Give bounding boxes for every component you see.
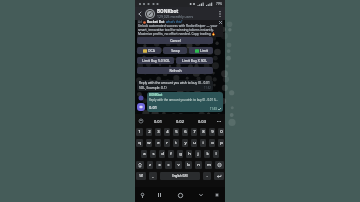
staticText: Limit Buy X SOL — [182, 58, 207, 63]
staticText: 4 — [166, 129, 169, 135]
staticText: BONKbot — [149, 93, 163, 97]
button[interactable]: q — [136, 139, 143, 147]
button[interactable]: m — [205, 161, 212, 169]
button[interactable]: 5 — [173, 128, 179, 136]
staticText: Swap — [171, 48, 180, 53]
staticText: v — [177, 162, 180, 168]
button[interactable]: i — [200, 139, 206, 147]
button[interactable]: w — [146, 139, 152, 147]
button[interactable]: k — [204, 150, 210, 158]
button[interactable]: Cancel — [137, 37, 213, 44]
button[interactable]: z — [147, 161, 153, 169]
staticText: n — [197, 162, 200, 168]
staticText: o — [211, 140, 214, 146]
button[interactable]: Voice input — [138, 118, 144, 124]
button[interactable]: More suggestions — [216, 118, 222, 124]
button[interactable]: Enter — [214, 172, 224, 180]
button[interactable]: . — [203, 172, 211, 180]
staticText: a — [143, 151, 146, 157]
staticText: English (UK) — [172, 174, 188, 178]
staticText: 1 — [138, 129, 141, 135]
button[interactable]: 8 — [200, 128, 206, 136]
button[interactable]: Shift — [136, 161, 144, 169]
staticText: BONKbot — [157, 8, 179, 14]
button[interactable]: o — [209, 139, 215, 147]
button[interactable]: h — [186, 150, 192, 158]
button[interactable]: English (UK) — [160, 172, 200, 180]
staticText: w — [147, 140, 151, 146]
staticText: 0.02 — [176, 119, 184, 124]
staticText: Reply with the amount you wish to buy (0… — [139, 81, 211, 90]
staticText: y — [184, 140, 187, 146]
button[interactable]: Swap — [163, 47, 187, 54]
button[interactable]: p — [218, 139, 224, 147]
button[interactable]: Limit Buy 5.0 SOL — [137, 57, 174, 64]
button[interactable]: d — [159, 150, 165, 158]
button[interactable]: 4 — [164, 128, 170, 136]
staticText: h — [188, 151, 191, 157]
button[interactable]: f — [168, 150, 174, 158]
staticText: 0.01 — [149, 105, 157, 110]
staticText: Limit — [200, 48, 208, 53]
staticText: Cancel — [170, 38, 181, 43]
staticText: what's this? — [166, 20, 183, 24]
button[interactable]: 3 — [155, 128, 161, 136]
staticText: !#1 — [139, 174, 144, 178]
staticText: Ad — [138, 20, 142, 24]
staticText: . — [206, 173, 208, 179]
button[interactable]: l — [213, 150, 219, 158]
button[interactable]: 2 — [146, 128, 152, 136]
button[interactable]: s — [150, 150, 156, 158]
staticText: g — [179, 151, 182, 157]
button[interactable]: x — [156, 161, 162, 169]
button[interactable]: Refresh — [137, 67, 213, 74]
staticText: t — [175, 140, 177, 146]
button[interactable]: t — [173, 139, 179, 147]
staticText: q — [138, 140, 141, 146]
button[interactable]: Back — [196, 190, 206, 200]
button[interactable]: Limit Buy X SOL — [176, 57, 213, 64]
button[interactable]: 7 — [191, 128, 197, 136]
button[interactable]: j — [195, 150, 201, 158]
button[interactable]: b — [185, 161, 192, 169]
button[interactable]: Back — [137, 11, 143, 17]
button[interactable]: 6 — [182, 128, 188, 136]
button[interactable]: Backspace — [215, 161, 224, 169]
staticText: 11:33 — [210, 107, 217, 111]
button[interactable]: Favorite — [212, 190, 222, 200]
button[interactable]: n — [195, 161, 202, 169]
button[interactable]: !#1 — [136, 172, 146, 180]
button[interactable]: e — [155, 139, 161, 147]
staticText: 79% — [216, 2, 222, 6]
staticText: Refresh — [169, 68, 182, 73]
button[interactable]: g — [177, 150, 183, 158]
staticText: Limit Buy 5.0 SOL — [142, 58, 170, 63]
staticText: f — [170, 151, 172, 157]
button[interactable]: 0 — [218, 128, 224, 136]
button[interactable]: , — [149, 172, 157, 180]
staticText: z — [149, 162, 151, 168]
button[interactable]: 1 — [136, 128, 143, 136]
button[interactable]: More options — [216, 10, 223, 17]
staticText: 0.01 — [154, 119, 162, 124]
staticText: 11:32 — [204, 86, 211, 90]
staticText: k — [206, 151, 209, 157]
staticText: l — [215, 151, 217, 157]
button[interactable]: u — [191, 139, 197, 147]
button[interactable]: c — [165, 161, 172, 169]
button[interactable]: Close ad — [218, 20, 222, 24]
button[interactable]: r — [164, 139, 170, 147]
staticText: b — [187, 162, 190, 168]
button[interactable]: y — [182, 139, 188, 147]
button[interactable]: 9 — [209, 128, 215, 136]
button[interactable]: v — [175, 161, 182, 169]
staticText: 0 — [220, 129, 223, 135]
staticText: j — [197, 151, 199, 157]
button[interactable]: Location — [137, 190, 147, 200]
button[interactable]: Limit — [189, 47, 213, 54]
staticText: e — [157, 140, 160, 146]
button[interactable]: DCA — [137, 47, 161, 54]
button[interactable]: Pause — [154, 190, 164, 200]
button[interactable]: Home — [175, 190, 185, 200]
button[interactable]: a — [141, 150, 147, 158]
